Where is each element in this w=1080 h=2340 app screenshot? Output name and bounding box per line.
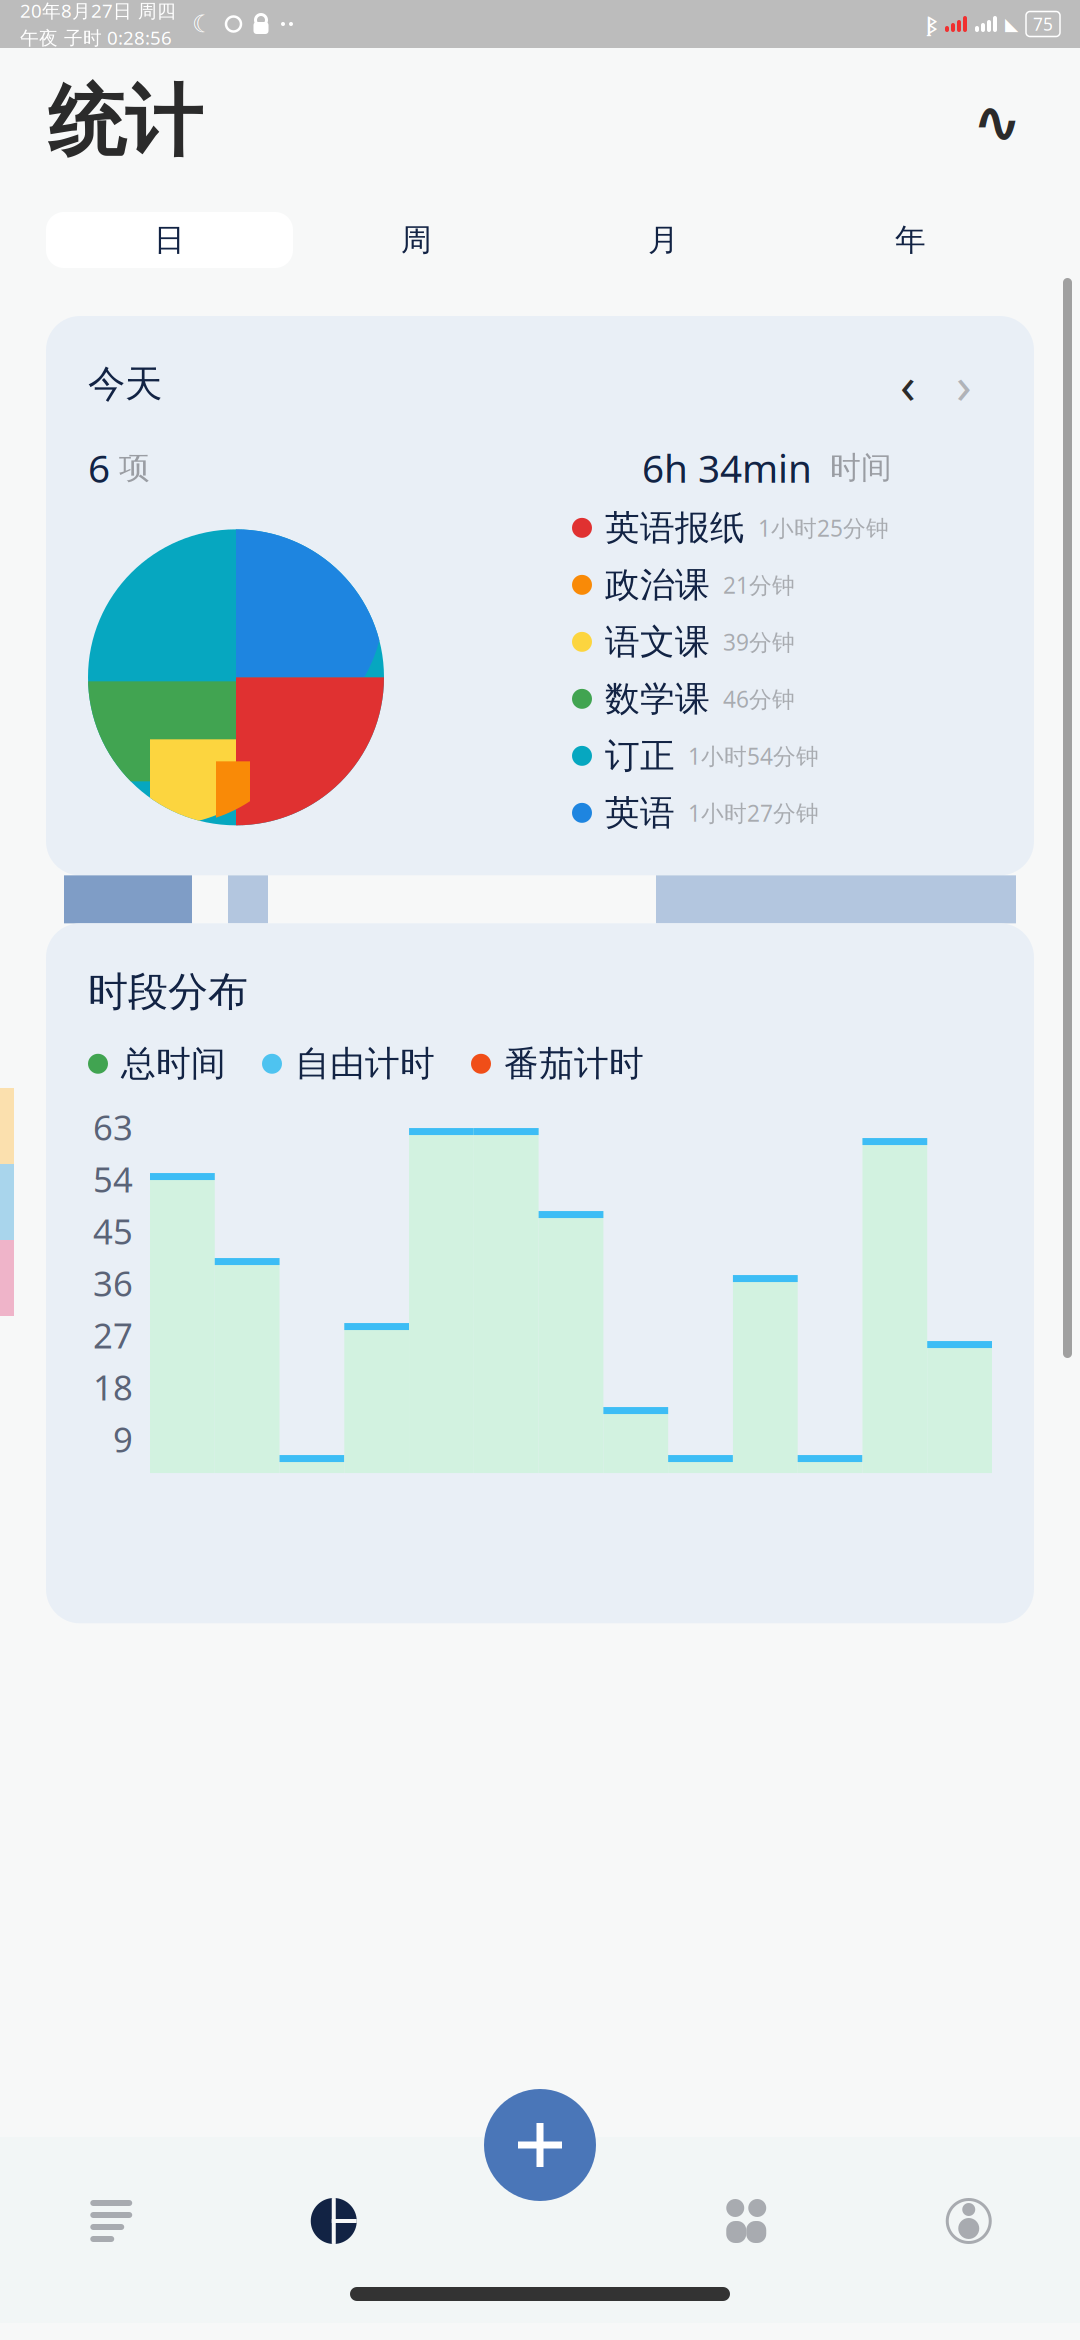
button[interactable]: Previous day bbox=[880, 356, 936, 412]
staticText: 时段分布 bbox=[88, 967, 248, 1016]
staticText: 周 bbox=[401, 221, 432, 259]
staticText: 英语报纸 bbox=[605, 507, 745, 549]
staticText: 45 bbox=[93, 1208, 133, 1254]
staticText: 18 bbox=[93, 1364, 133, 1410]
staticText: 1小时54分钟 bbox=[688, 741, 819, 771]
button[interactable]: Profile bbox=[857, 2173, 1080, 2269]
button[interactable]: Friends bbox=[635, 2173, 857, 2269]
staticText: 数学课 bbox=[605, 678, 710, 720]
staticText: 时间 bbox=[812, 449, 892, 486]
button[interactable]: Trends bbox=[962, 87, 1032, 157]
staticText: ☾ bbox=[192, 10, 214, 38]
staticText: 1小时25分钟 bbox=[758, 513, 889, 543]
button[interactable]: Statistics bbox=[222, 2173, 445, 2269]
staticText: 今天 bbox=[88, 361, 162, 407]
button[interactable]: 周 bbox=[293, 212, 540, 268]
staticText: › bbox=[956, 350, 972, 418]
staticText: 日 bbox=[154, 221, 185, 259]
staticText: 统计 bbox=[48, 74, 202, 169]
button[interactable]: 月 bbox=[540, 212, 787, 268]
staticText: 21分钟 bbox=[723, 570, 795, 600]
staticText: 英语 bbox=[605, 792, 675, 834]
staticText: 年 bbox=[895, 221, 926, 259]
button[interactable]: Add bbox=[484, 2089, 596, 2201]
staticText: 项 bbox=[110, 449, 150, 486]
staticText: 39分钟 bbox=[723, 627, 795, 657]
staticText: 1小时27分钟 bbox=[688, 798, 819, 828]
staticText: 46分钟 bbox=[723, 684, 795, 714]
staticText: 6h 34min bbox=[642, 442, 812, 493]
staticText: 54 bbox=[93, 1156, 133, 1202]
staticText: 订正 bbox=[605, 735, 675, 777]
staticText: 75 bbox=[1033, 12, 1053, 35]
staticText: ‹ bbox=[900, 350, 916, 418]
button[interactable]: Next day bbox=[936, 356, 992, 412]
staticText: 63 bbox=[93, 1104, 133, 1150]
staticText: 自由计时 bbox=[295, 1042, 435, 1085]
staticText: 政治课 bbox=[605, 564, 710, 606]
staticText: 番茄计时 bbox=[504, 1042, 644, 1085]
staticText: 9 bbox=[113, 1416, 133, 1462]
staticText: 36 bbox=[93, 1260, 133, 1306]
staticText: 月 bbox=[648, 221, 679, 259]
button[interactable]: 年 bbox=[787, 212, 1034, 268]
staticText: ∿ bbox=[972, 89, 1021, 155]
staticText: ᛒ bbox=[926, 11, 937, 37]
staticText: 27 bbox=[93, 1312, 133, 1358]
staticText: 语文课 bbox=[605, 621, 710, 663]
staticText: 午夜 子时 0:28:56 bbox=[20, 25, 172, 50]
staticText: 6 bbox=[88, 442, 110, 493]
staticText: 20年8月27日 周四 bbox=[20, 0, 176, 23]
staticText: ◣ bbox=[1005, 14, 1018, 34]
button[interactable]: Tasks bbox=[0, 2173, 222, 2269]
button[interactable]: 日 bbox=[46, 212, 293, 268]
staticText: 总时间 bbox=[121, 1042, 226, 1085]
